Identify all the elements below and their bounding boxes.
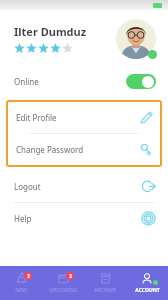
staticText: ACCOUNT: [135, 287, 160, 294]
staticText: 3: [69, 273, 72, 280]
staticText: ARCHIVE: [94, 287, 116, 294]
button[interactable]: 3: [0, 266, 42, 300]
staticText: Online: [14, 76, 39, 87]
staticText: 3: [27, 273, 30, 280]
other: Change Password: [139, 142, 154, 157]
button[interactable]: Help: [0, 203, 168, 234]
other: Edit Profile: [139, 110, 154, 125]
other: Help: [141, 211, 156, 226]
staticText: Ilter Dumduz: [14, 24, 87, 39]
staticText: Change Password: [16, 144, 84, 155]
button[interactable]: ARCHIVE: [84, 266, 126, 300]
button[interactable]: Edit Profile: [8, 102, 160, 133]
staticText: Logout: [14, 181, 41, 192]
staticText: Help: [14, 213, 32, 224]
other: Logout: [141, 179, 156, 194]
staticText: Edit Profile: [16, 112, 57, 123]
button[interactable]: ACCOUNT: [126, 266, 168, 300]
button[interactable]: Logout: [0, 171, 168, 202]
button[interactable]: 3: [42, 266, 84, 300]
staticText: NEW: [15, 287, 27, 294]
staticText: UPCOMING: [49, 287, 78, 294]
button[interactable]: Change Password: [8, 134, 160, 165]
button[interactable]: Online: [0, 68, 168, 94]
